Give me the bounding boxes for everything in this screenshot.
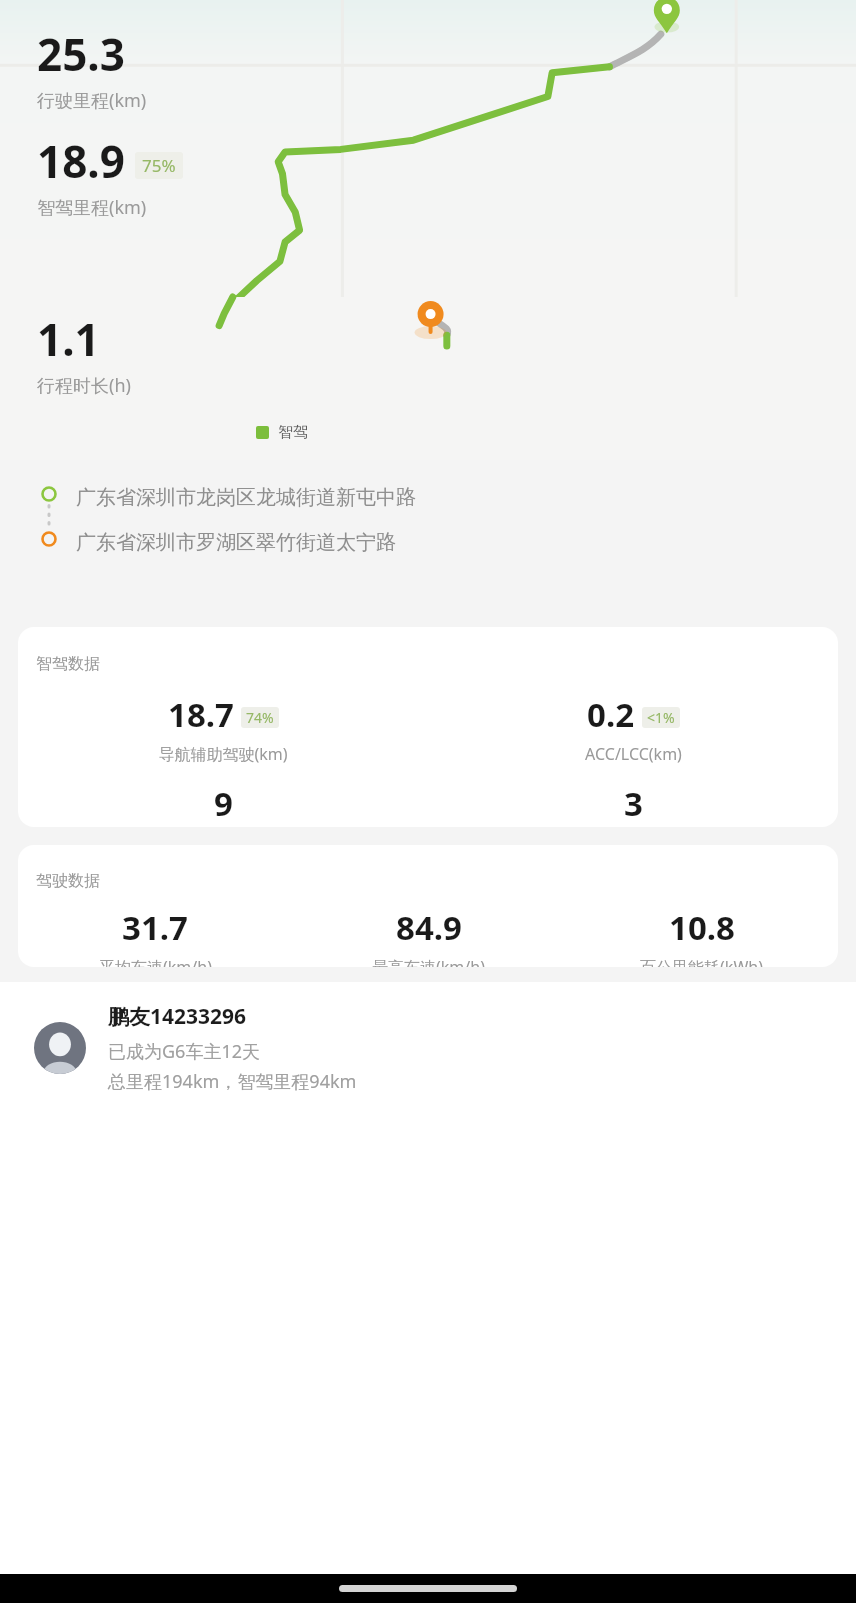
staticText: 最高车速(km/h): [372, 956, 485, 967]
staticText: 75%: [142, 154, 176, 177]
button[interactable]: 9: [18, 781, 428, 827]
staticText: 导航辅助驾驶(km): [158, 743, 288, 765]
staticText: 3: [624, 781, 643, 826]
staticText: 10.8: [669, 905, 735, 950]
staticText: <1%: [647, 708, 675, 727]
staticText: 31.7: [122, 905, 188, 950]
staticText: 百公里能耗(kWh): [640, 956, 763, 967]
staticText: 25.3: [37, 24, 125, 84]
button[interactable]: 智驾数据: [18, 627, 838, 827]
button[interactable]: 18.7: [18, 692, 428, 765]
staticText: 总里程194km，智驾里程94km: [108, 1069, 357, 1094]
button[interactable]: 84.9: [292, 905, 565, 967]
staticText: 84.9: [396, 905, 462, 950]
staticText: 智驾数据: [36, 654, 100, 674]
staticText: 广东省深圳市罗湖区翠竹街道太宁路: [76, 530, 396, 555]
staticText: ACC/LCC(km): [585, 743, 682, 765]
button[interactable]: 0.2: [428, 692, 838, 765]
other: Profile avatar: [34, 1022, 86, 1074]
staticText: 9: [214, 781, 233, 826]
button[interactable]: 3: [428, 781, 838, 827]
staticText: 驾驶数据: [36, 871, 100, 891]
button[interactable]: 31.7: [18, 905, 292, 967]
staticText: 74%: [246, 708, 274, 727]
staticText: 智驾: [278, 423, 308, 442]
staticText: 行程时长(h): [37, 373, 131, 398]
staticText: 1.1: [37, 309, 100, 369]
button[interactable]: 10.8: [565, 905, 838, 967]
staticText: 平均车速(km/h): [99, 956, 212, 967]
staticText: 18.7: [168, 692, 234, 737]
staticText: 智驾里程(km): [37, 195, 147, 220]
staticText: 18.9: [37, 131, 125, 191]
staticText: 广东省深圳市龙岗区龙城街道新屯中路: [76, 485, 416, 510]
button[interactable]: 驾驶数据: [18, 845, 838, 967]
button[interactable]: Profile avatar: [34, 1002, 856, 1094]
staticText: 已成为G6车主12天: [108, 1039, 260, 1064]
staticText: 0.2: [587, 692, 635, 737]
staticText: 鹏友14233296: [108, 1002, 247, 1031]
staticText: 行驶里程(km): [37, 88, 147, 113]
